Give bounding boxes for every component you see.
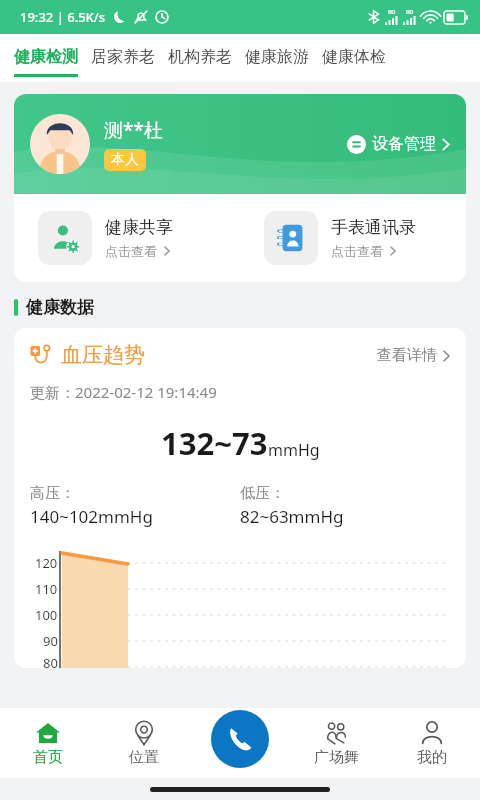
staticText: 高压：: [30, 484, 75, 503]
button[interactable]: 健康旅游: [245, 34, 309, 82]
staticText: 健康体检: [322, 47, 386, 67]
button[interactable]: 广场舞: [288, 708, 384, 778]
staticText: 查看详情: [377, 346, 437, 365]
staticText: HD: [406, 9, 414, 16]
button[interactable]: 手表通讯录: [264, 194, 466, 282]
staticText: HD: [388, 9, 396, 16]
button[interactable]: 居家养老: [91, 34, 155, 82]
staticText: 健康检测: [14, 47, 78, 67]
staticText: 设备管理: [372, 134, 436, 154]
staticText: 本人: [111, 151, 139, 169]
button[interactable]: 设备管理: [347, 134, 450, 154]
button[interactable]: Call: [211, 710, 269, 768]
staticText: 首页: [33, 748, 63, 767]
staticText: 120: [35, 554, 58, 572]
button[interactable]: 健康共享: [38, 194, 240, 282]
staticText: 140~102mmHg: [30, 505, 153, 528]
button[interactable]: 查看详情: [377, 346, 450, 365]
button[interactable]: 健康体检: [322, 34, 386, 82]
button[interactable]: 测**杜: [14, 94, 466, 194]
staticText: 90: [43, 632, 58, 650]
button[interactable]: 位置: [96, 708, 192, 778]
staticText: 广场舞: [314, 748, 359, 767]
staticText: 82~63mmHg: [240, 505, 344, 528]
staticText: mmHg: [268, 439, 320, 461]
staticText: 血压趋势: [61, 342, 145, 368]
button[interactable]: 机构养老: [168, 34, 232, 82]
staticText: 居家养老: [91, 47, 155, 67]
button[interactable]: 我的: [384, 708, 480, 778]
staticText: 位置: [129, 748, 159, 767]
button[interactable]: 首页: [0, 708, 96, 778]
staticText: 健康旅游: [245, 47, 309, 67]
staticText: 132~73: [161, 422, 268, 464]
staticText: 健康数据: [26, 297, 94, 318]
staticText: 健康共享: [105, 217, 173, 238]
staticText: 机构养老: [168, 47, 232, 67]
staticText: 我的: [417, 748, 447, 767]
staticText: 更新：2022-02-12 19:14:49: [30, 382, 217, 402]
staticText: 110: [35, 580, 58, 598]
button[interactable]: 健康检测: [14, 34, 78, 82]
staticText: 低压：: [240, 484, 285, 503]
staticText: 100: [35, 606, 58, 624]
staticText: 点击查看: [331, 243, 383, 259]
staticText: 测**杜: [104, 117, 163, 143]
staticText: 点击查看: [105, 243, 157, 259]
staticText: 80: [43, 654, 58, 668]
staticText: 19:32 | 6.5K/s: [20, 8, 106, 26]
staticText: 手表通讯录: [331, 217, 416, 238]
